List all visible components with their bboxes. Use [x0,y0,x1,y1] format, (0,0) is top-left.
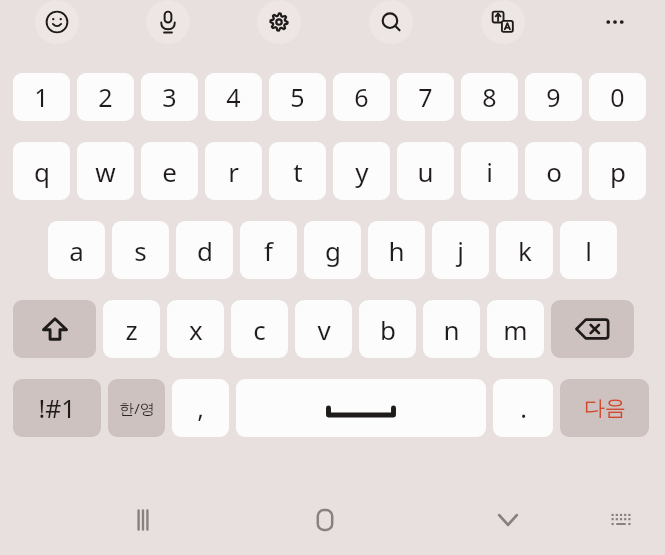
button[interactable]: b [359,300,416,358]
button[interactable]: a [48,221,105,279]
button[interactable]: Backspace [551,300,634,358]
button[interactable]: 9 [525,73,582,121]
button[interactable]: !#1 [13,379,101,437]
button[interactable]: m [487,300,544,358]
staticText: g [325,233,341,268]
staticText: , [197,391,204,425]
button[interactable]: Search [369,0,413,44]
button[interactable]: Emoji [35,0,79,44]
staticText: 8 [482,80,497,114]
button[interactable]: 3 [141,73,198,121]
staticText: e [162,154,177,189]
staticText: q [34,154,50,189]
button[interactable]: 4 [205,73,262,121]
staticText: m [503,312,528,347]
button[interactable]: 6 [333,73,390,121]
staticText: p [610,154,626,189]
staticText: 0 [610,80,625,114]
button[interactable]: 7 [397,73,454,121]
button[interactable]: Voice input [146,0,190,44]
button[interactable]: t [269,142,326,200]
staticText: y [355,154,369,189]
staticText: 한/영 [119,398,155,418]
staticText: 3 [162,80,177,114]
staticText: f [264,233,273,268]
staticText: i [486,154,493,189]
button[interactable]: d [176,221,233,279]
staticText: w [95,154,116,189]
button[interactable]: Korean English toggle [108,379,165,437]
staticText: . [520,391,527,425]
staticText: l [585,233,592,268]
button[interactable]: Change keyboard [593,492,649,548]
staticText: 다음 [584,395,626,421]
button[interactable]: Settings [257,0,301,44]
button[interactable]: u [397,142,454,200]
staticText: s [134,233,147,268]
button[interactable]: e [141,142,198,200]
button[interactable]: l [560,221,617,279]
staticText: 1 [34,80,49,114]
button[interactable]: 8 [461,73,518,121]
staticText: u [417,154,434,189]
staticText: !#1 [38,391,76,425]
button[interactable]: o [525,142,582,200]
button[interactable]: h [368,221,425,279]
button[interactable]: Shift [13,300,96,358]
button[interactable]: w [77,142,134,200]
button[interactable]: g [304,221,361,279]
button[interactable]: i [461,142,518,200]
staticText: h [388,233,405,268]
staticText: t [293,154,303,189]
staticText: a [69,233,84,268]
staticText: k [518,233,532,268]
button[interactable]: y [333,142,390,200]
button[interactable]: 다음 [560,379,649,437]
staticText: o [546,154,562,189]
staticText: x [189,312,203,347]
button[interactable]: f [240,221,297,279]
staticText: b [380,312,396,347]
button[interactable]: Translate [481,0,525,44]
button[interactable]: c [231,300,288,358]
button[interactable]: p [589,142,646,200]
button[interactable]: q [13,142,70,200]
button[interactable]: n [423,300,480,358]
staticText: 6 [354,80,369,114]
staticText: r [228,154,239,189]
staticText: 2 [98,80,113,114]
staticText: n [443,312,460,347]
button[interactable]: . [493,379,553,437]
button[interactable]: 5 [269,73,326,121]
button[interactable]: Home [297,492,353,548]
button[interactable]: s [112,221,169,279]
button[interactable]: 1 [13,73,70,121]
button[interactable]: x [167,300,224,358]
button[interactable]: k [496,221,553,279]
button[interactable]: 0 [589,73,646,121]
staticText: 5 [290,80,305,114]
staticText: 9 [546,80,561,114]
button[interactable]: Hide keyboard [480,492,536,548]
button[interactable]: 2 [77,73,134,121]
staticText: d [197,233,213,268]
staticText: v [317,312,331,347]
button[interactable]: , [172,379,229,437]
button[interactable]: v [295,300,352,358]
button[interactable]: More options [593,0,637,44]
button[interactable]: j [432,221,489,279]
staticText: z [125,312,138,347]
button[interactable]: z [103,300,160,358]
button[interactable]: r [205,142,262,200]
staticText: c [253,312,266,347]
staticText: j [457,233,464,268]
staticText: 4 [226,80,241,114]
staticText: 7 [418,80,433,114]
button[interactable]: Recents [115,492,171,548]
button[interactable]: Space [236,379,486,437]
